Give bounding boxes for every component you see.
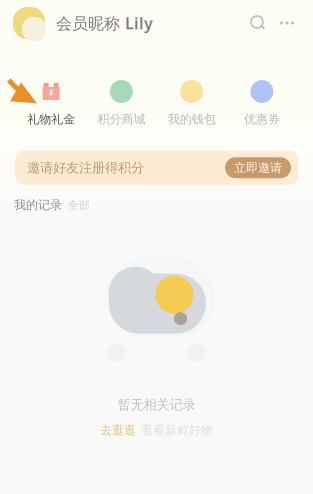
staticText: 看看新鲜好物 xyxy=(141,423,213,438)
staticText: 立即邀请 xyxy=(234,160,282,175)
staticText: 暂无相关记录 xyxy=(117,397,195,413)
button[interactable]: 积分商城 xyxy=(86,80,156,127)
staticText: 我的记录 xyxy=(14,198,62,212)
staticText: 礼物礼金 xyxy=(27,112,75,127)
button[interactable]: 我的钱包 xyxy=(156,80,227,127)
staticText: 优惠券 xyxy=(244,112,280,127)
staticText: 我的钱包 xyxy=(168,112,216,127)
staticText: 全部 xyxy=(68,199,90,212)
button[interactable]: 会员昵称 Lily xyxy=(13,7,153,39)
staticText: 邀请好友注册得积分 xyxy=(27,160,144,176)
button[interactable]: Search xyxy=(249,14,267,32)
staticText: 去逛逛 xyxy=(100,423,136,438)
staticText: 积分商城 xyxy=(97,112,145,127)
staticText: 会员昵称 Lily xyxy=(56,12,153,34)
button[interactable]: 礼物礼金 xyxy=(16,80,86,127)
button[interactable]: 邀请好友注册得积分 xyxy=(15,151,298,185)
button[interactable]: More xyxy=(278,14,296,32)
button[interactable]: 优惠券 xyxy=(227,80,297,127)
